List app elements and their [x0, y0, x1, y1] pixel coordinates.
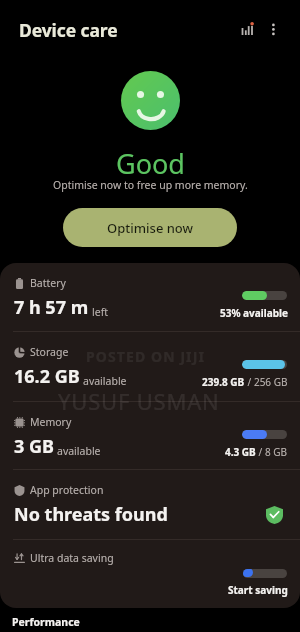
staticText: 53% available [220, 306, 288, 320]
staticText: left [92, 305, 109, 319]
staticText: Performance [12, 615, 80, 629]
staticText: Start saving [228, 583, 288, 597]
staticText: Optimise now to free up more memory. [53, 178, 248, 192]
staticText: Battery [30, 276, 66, 290]
staticText: 3 GB [14, 434, 54, 459]
staticText: 16.2 GB [14, 364, 80, 389]
button[interactable]: Storage [0, 332, 300, 401]
button[interactable]: Memory [0, 402, 300, 469]
staticText: 7 h 57 m [14, 295, 89, 320]
button[interactable]: More options [264, 14, 284, 34]
staticText: available [83, 374, 127, 388]
staticText: 4.3 GB [225, 445, 256, 459]
staticText: / 8 GB [256, 445, 288, 459]
staticText: 239.8 GB [202, 375, 245, 389]
button[interactable]: Optimise now [63, 208, 237, 247]
staticText: Device care [19, 18, 118, 42]
staticText: Optimise now [107, 219, 194, 237]
button[interactable]: Usage statistics [236, 12, 266, 42]
button[interactable]: Ultra data saving toggle [243, 569, 287, 578]
button[interactable]: Ultra data saving [0, 540, 300, 608]
staticText: Good [116, 145, 185, 182]
staticText: Ultra data saving [30, 551, 114, 565]
staticText: Memory [30, 415, 72, 429]
staticText: No threats found [14, 502, 168, 527]
button[interactable]: App protection [0, 470, 300, 539]
staticText: YUSUF USMAN [58, 386, 220, 416]
staticText: / 256 GB [245, 375, 288, 389]
staticText: available [57, 444, 101, 458]
staticText: Storage [30, 345, 69, 359]
button[interactable]: Battery [0, 263, 300, 331]
staticText: App protection [30, 483, 104, 497]
staticText: POSTED ON JIJI [86, 347, 205, 366]
